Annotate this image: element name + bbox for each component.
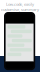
staticText: Low-code, easily [6,1,34,7]
staticText: customise, summary [1,7,39,12]
